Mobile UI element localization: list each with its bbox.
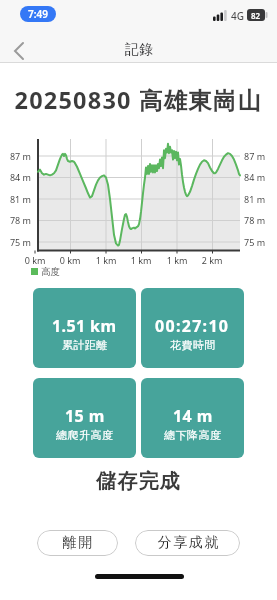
- staticText: 高度: [41, 266, 60, 278]
- staticText: 78 m: [2, 214, 31, 226]
- staticText: 總下降高度: [164, 428, 221, 442]
- staticText: 1 km: [127, 254, 155, 266]
- staticText: 7:49: [28, 7, 48, 21]
- staticText: 離開: [62, 534, 93, 552]
- staticText: 花費時間: [170, 338, 216, 352]
- staticText: 分享成就: [157, 534, 219, 552]
- staticText: 總爬升高度: [56, 428, 113, 442]
- staticText: 2 km: [198, 254, 226, 266]
- button[interactable]: 分享成就: [135, 530, 240, 556]
- staticText: 1.51 km: [52, 315, 117, 337]
- staticText: 4G: [231, 9, 244, 23]
- staticText: 75 m: [2, 236, 31, 248]
- staticText: 記錄: [125, 41, 153, 59]
- staticText: 0 km: [56, 254, 84, 266]
- staticText: 87 m: [244, 150, 266, 162]
- staticText: 14 m: [173, 405, 213, 427]
- button[interactable]: 00:27:10: [141, 288, 244, 368]
- staticText: 儲存完成: [0, 469, 277, 494]
- staticText: 78 m: [244, 214, 266, 226]
- staticText: 81 m: [244, 193, 266, 205]
- button[interactable]: [6, 38, 34, 63]
- button[interactable]: 15 m: [33, 378, 136, 458]
- staticText: 1 km: [163, 254, 191, 266]
- button[interactable]: 離開: [37, 530, 118, 556]
- staticText: 20250830 高雄東崗山: [0, 84, 277, 116]
- staticText: 75 m: [244, 236, 266, 248]
- button[interactable]: 1.51 km: [33, 288, 136, 368]
- staticText: 87 m: [2, 150, 31, 162]
- staticText: 0 km: [21, 254, 49, 266]
- staticText: 15 m: [65, 405, 105, 427]
- staticText: 82: [251, 10, 261, 21]
- staticText: 00:27:10: [155, 315, 230, 337]
- staticText: 累計距離: [62, 338, 108, 352]
- staticText: 81 m: [2, 193, 31, 205]
- staticText: 84 m: [2, 171, 31, 183]
- staticText: 84 m: [244, 171, 266, 183]
- button[interactable]: 14 m: [141, 378, 244, 458]
- staticText: 1 km: [92, 254, 120, 266]
